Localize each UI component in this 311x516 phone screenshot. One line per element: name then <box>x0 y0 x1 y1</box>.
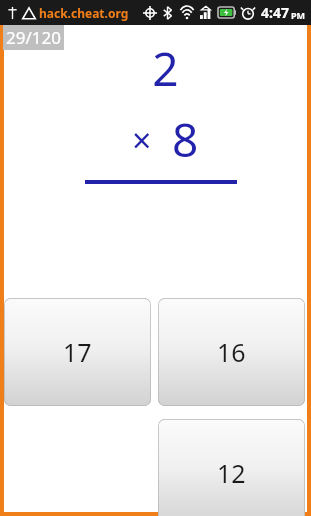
staticText: 8 <box>172 108 199 171</box>
staticText: 17 <box>63 335 92 369</box>
staticText: 16 <box>217 335 246 369</box>
staticText: hack.cheat.org <box>39 5 129 21</box>
staticText: 2 <box>152 37 179 100</box>
staticText: 12 <box>217 456 246 490</box>
staticText: × <box>132 117 152 163</box>
staticText: 4:47 <box>261 3 289 22</box>
staticText: PM <box>291 9 306 21</box>
button[interactable]: 12 <box>158 419 305 516</box>
button[interactable]: 17 <box>4 298 151 406</box>
staticText: 29/120 <box>6 26 61 49</box>
button[interactable]: 16 <box>158 298 305 406</box>
